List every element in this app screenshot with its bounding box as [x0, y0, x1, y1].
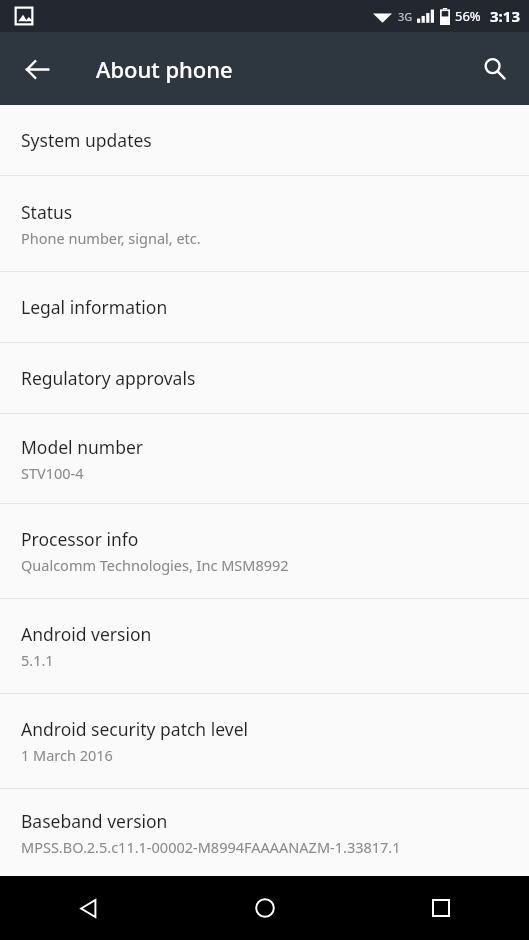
- staticText: Processor info: [21, 527, 139, 551]
- staticText: 1 March 2016: [21, 745, 113, 765]
- button[interactable]: System updates: [0, 105, 529, 175]
- staticText: Model number: [21, 435, 144, 459]
- button[interactable]: Back: [0, 876, 177, 940]
- button[interactable]: Android security patch level: [0, 694, 529, 788]
- staticText: MPSS.BO.2.5.c11.1-00002-M8994FAAAANAZM-1…: [21, 837, 401, 857]
- staticText: Status: [21, 200, 73, 224]
- staticText: System updates: [21, 128, 152, 152]
- button[interactable]: Android version: [0, 599, 529, 693]
- staticText: Regulatory approvals: [21, 366, 196, 390]
- staticText: Android version: [21, 622, 152, 646]
- button[interactable]: Processor info: [0, 504, 529, 598]
- staticText: About phone: [96, 54, 233, 84]
- staticText: 5.1.1: [21, 650, 54, 670]
- staticText: STV100-4: [21, 463, 84, 483]
- staticText: Baseband version: [21, 809, 168, 833]
- staticText: 56%: [455, 7, 481, 25]
- staticText: Legal information: [21, 295, 168, 319]
- staticText: Phone number, signal, etc.: [21, 228, 201, 248]
- button[interactable]: Status: [0, 176, 529, 271]
- button[interactable]: Model number: [0, 414, 529, 503]
- button[interactable]: Navigate up: [10, 42, 64, 96]
- button[interactable]: Recent apps: [353, 876, 529, 940]
- staticText: 3:13: [490, 6, 520, 26]
- staticText: 3G: [398, 9, 413, 24]
- staticText: Android security patch level: [21, 717, 249, 741]
- staticText: Qualcomm Technologies, Inc MSM8992: [21, 555, 289, 575]
- button[interactable]: Regulatory approvals: [0, 343, 529, 413]
- button[interactable]: Legal information: [0, 272, 529, 342]
- button[interactable]: Baseband version: [0, 789, 529, 876]
- button[interactable]: Home: [177, 876, 353, 940]
- button[interactable]: Search: [468, 42, 522, 96]
